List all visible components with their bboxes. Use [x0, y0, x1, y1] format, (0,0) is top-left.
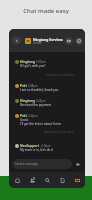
button[interactable]: Home — [10, 173, 24, 187]
button[interactable]: Send a message — [12, 159, 72, 169]
staticText: 3:08pm — [28, 84, 38, 88]
button[interactable]: Video call — [65, 37, 73, 45]
staticText: Online — [33, 41, 42, 45]
button[interactable]: Files — [55, 173, 69, 187]
staticText: message received now — [46, 73, 74, 77]
button[interactable]: Contacts — [25, 173, 39, 187]
staticText: Hingtong — [20, 60, 35, 64]
button[interactable]: Search — [40, 173, 54, 187]
staticText: Hi! girl's with you? — [20, 64, 46, 68]
staticText: 3:26pm — [28, 114, 38, 118]
button[interactable]: NeoSupport — [15, 144, 82, 152]
staticText: Good. — [20, 118, 29, 122]
staticText: 3:25pm — [36, 99, 46, 103]
button[interactable]: Back — [12, 36, 21, 45]
staticText: Hingtong Services — [33, 37, 63, 41]
staticText: 3:07pm — [36, 60, 46, 64]
staticText: 4:14pm — [41, 144, 51, 148]
button[interactable]: Send — [74, 160, 82, 168]
staticText: I'll get the link in about 5 min — [20, 122, 62, 126]
staticText: Send a message — [15, 162, 38, 166]
staticText: NeoSupport — [20, 144, 40, 148]
staticText: Chat made easy — [0, 7, 92, 15]
button[interactable]: More — [70, 173, 84, 187]
staticText: Priti — [20, 84, 27, 88]
button[interactable]: Info — [75, 37, 83, 45]
button[interactable]: Priti — [15, 114, 82, 126]
staticText: Hingtong — [20, 99, 35, 103]
staticText: Received the payment — [20, 103, 52, 107]
button[interactable]: Hingtong — [15, 99, 82, 107]
staticText: I am so thankful, thank you — [20, 88, 59, 92]
button[interactable]: Hingtong — [15, 60, 82, 68]
staticText: My team is in, let's do it — [20, 148, 53, 152]
staticText: Priti — [20, 114, 27, 118]
button[interactable]: Priti — [15, 84, 82, 92]
staticText: Restaurant and lets do it — [44, 130, 74, 134]
